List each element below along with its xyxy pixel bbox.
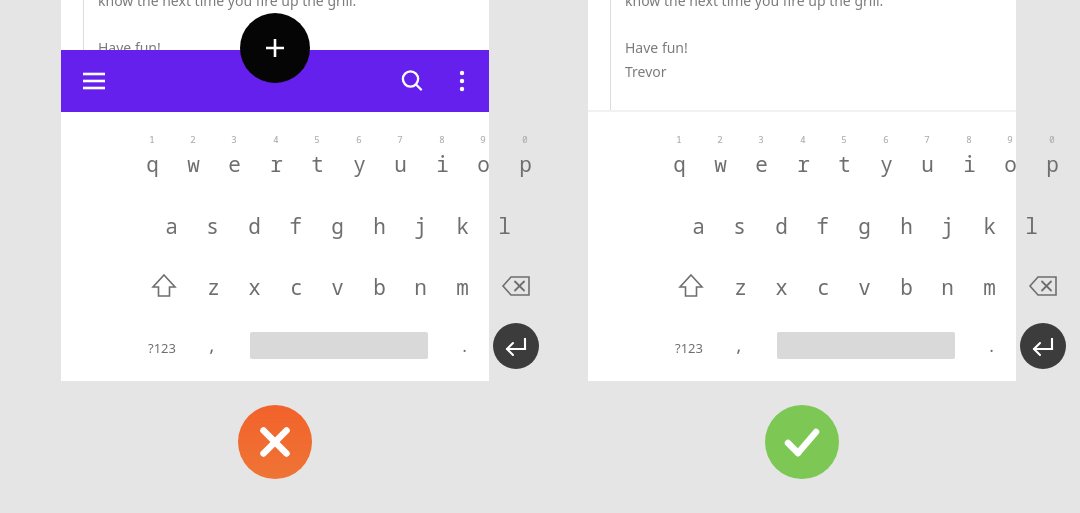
- button[interactable]: [256, 128, 296, 180]
- button[interactable]: [132, 128, 172, 180]
- button[interactable]: [844, 202, 884, 250]
- button[interactable]: [802, 202, 842, 250]
- button[interactable]: [720, 263, 760, 309]
- button[interactable]: [927, 202, 967, 250]
- staticText: x: [775, 273, 788, 302]
- button[interactable]: [719, 202, 759, 250]
- button[interactable]: [949, 128, 989, 180]
- button[interactable]: [700, 128, 740, 180]
- button[interactable]: [1011, 202, 1051, 250]
- button[interactable]: [678, 202, 718, 250]
- staticText: t: [838, 150, 851, 179]
- button[interactable]: [442, 263, 482, 309]
- button[interactable]: [151, 202, 191, 250]
- button[interactable]: [718, 325, 758, 367]
- button[interactable]: Search: [390, 59, 434, 103]
- button[interactable]: [400, 263, 440, 309]
- button[interactable]: [886, 202, 926, 250]
- button[interactable]: [741, 128, 781, 180]
- staticText: know the next time you fire up the grill…: [625, 0, 884, 10]
- staticText: x: [248, 273, 261, 302]
- staticText: .: [459, 334, 470, 357]
- button[interactable]: [886, 263, 926, 309]
- button[interactable]: [803, 263, 843, 309]
- staticText: q: [673, 150, 686, 179]
- button[interactable]: Backspace: [493, 263, 539, 309]
- staticText: 4: [800, 133, 806, 145]
- button[interactable]: Backspace: [1020, 263, 1066, 309]
- button[interactable]: [659, 128, 699, 180]
- button[interactable]: [275, 202, 315, 250]
- button[interactable]: More options: [440, 59, 484, 103]
- button[interactable]: [484, 202, 524, 250]
- button[interactable]: Shift: [670, 263, 712, 309]
- button[interactable]: [317, 202, 357, 250]
- button[interactable]: [380, 128, 420, 180]
- staticText: v: [858, 273, 871, 302]
- staticText: .: [986, 334, 997, 357]
- button[interactable]: [191, 325, 231, 367]
- staticText: 8: [439, 133, 445, 145]
- button[interactable]: Menu: [72, 59, 116, 103]
- staticText: u: [921, 150, 934, 179]
- button[interactable]: [442, 202, 482, 250]
- button[interactable]: Enter: [493, 323, 539, 369]
- staticText: 2: [717, 133, 723, 145]
- staticText: n: [414, 273, 427, 302]
- button[interactable]: [505, 128, 545, 180]
- button[interactable]: [400, 202, 440, 250]
- button[interactable]: [971, 325, 1011, 367]
- button[interactable]: [214, 128, 254, 180]
- staticText: 0: [522, 133, 528, 145]
- button[interactable]: [131, 325, 195, 367]
- staticText: d: [248, 212, 261, 241]
- button[interactable]: [824, 128, 864, 180]
- button[interactable]: Enter: [1020, 323, 1066, 369]
- staticText: m: [456, 273, 469, 302]
- button[interactable]: [276, 263, 316, 309]
- staticText: f: [816, 212, 829, 241]
- button[interactable]: [990, 128, 1030, 180]
- staticText: 4: [273, 133, 279, 145]
- button[interactable]: [359, 202, 399, 250]
- staticText: 0: [1049, 133, 1055, 145]
- button[interactable]: [866, 128, 906, 180]
- button[interactable]: [359, 263, 399, 309]
- button[interactable]: [339, 128, 379, 180]
- staticText: u: [394, 150, 407, 179]
- button[interactable]: Correct: [765, 405, 839, 479]
- button[interactable]: [907, 128, 947, 180]
- button[interactable]: [969, 263, 1009, 309]
- button[interactable]: [444, 325, 484, 367]
- button[interactable]: [463, 128, 503, 180]
- button[interactable]: [317, 263, 357, 309]
- button[interactable]: [1032, 128, 1072, 180]
- staticText: 3: [231, 133, 237, 145]
- button[interactable]: [761, 202, 801, 250]
- button[interactable]: Incorrect: [238, 405, 312, 479]
- staticText: w: [187, 150, 200, 179]
- button[interactable]: [173, 128, 213, 180]
- button[interactable]: [422, 128, 462, 180]
- staticText: 5: [314, 133, 320, 145]
- button[interactable]: [761, 263, 801, 309]
- button[interactable]: Shift: [143, 263, 185, 309]
- button[interactable]: [927, 263, 967, 309]
- button[interactable]: [297, 128, 337, 180]
- staticText: 7: [397, 133, 403, 145]
- button[interactable]: [234, 263, 274, 309]
- staticText: r: [797, 150, 810, 179]
- button[interactable]: Add: [240, 13, 310, 83]
- button[interactable]: [969, 202, 1009, 250]
- button[interactable]: [192, 202, 232, 250]
- staticText: o: [477, 150, 490, 179]
- staticText: m: [983, 273, 996, 302]
- button[interactable]: [783, 128, 823, 180]
- staticText: p: [519, 150, 532, 179]
- button[interactable]: [234, 202, 274, 250]
- button[interactable]: [193, 263, 233, 309]
- button[interactable]: [658, 325, 722, 367]
- button[interactable]: [844, 263, 884, 309]
